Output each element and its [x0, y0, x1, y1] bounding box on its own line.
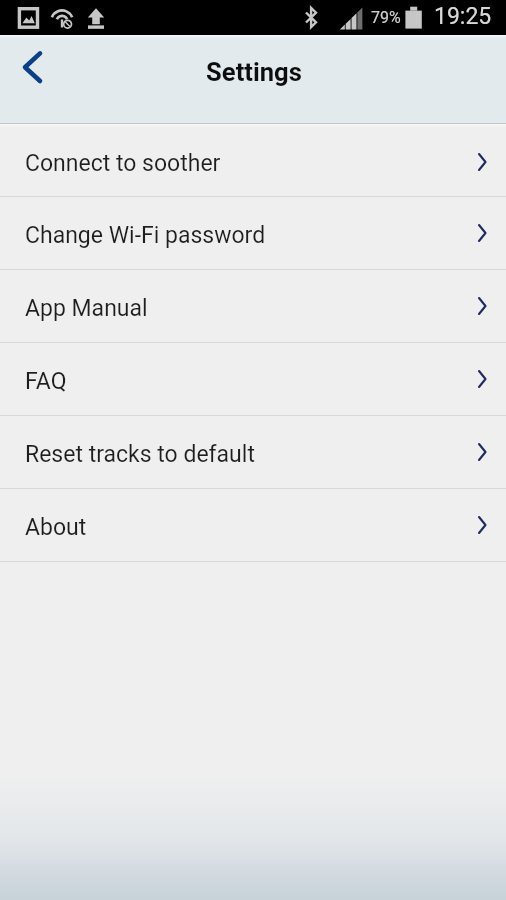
button[interactable]: Connect to soother	[0, 127, 506, 196]
button[interactable]: Reset tracks to default	[0, 416, 506, 488]
button[interactable]: App Manual	[0, 270, 506, 342]
button[interactable]: Back	[4, 39, 62, 97]
staticText: About	[25, 514, 471, 541]
button[interactable]: FAQ	[0, 343, 506, 415]
staticText: FAQ	[25, 368, 471, 395]
staticText: App Manual	[25, 295, 471, 322]
staticText: 19:25	[434, 3, 492, 30]
staticText: Settings	[1, 57, 506, 87]
staticText: Connect to soother	[25, 150, 471, 177]
staticText: 79%	[371, 8, 401, 27]
button[interactable]: Change Wi-Fi password	[0, 197, 506, 269]
button[interactable]: About	[0, 489, 506, 561]
staticText: Change Wi-Fi password	[25, 222, 471, 249]
staticText: Reset tracks to default	[25, 441, 471, 468]
